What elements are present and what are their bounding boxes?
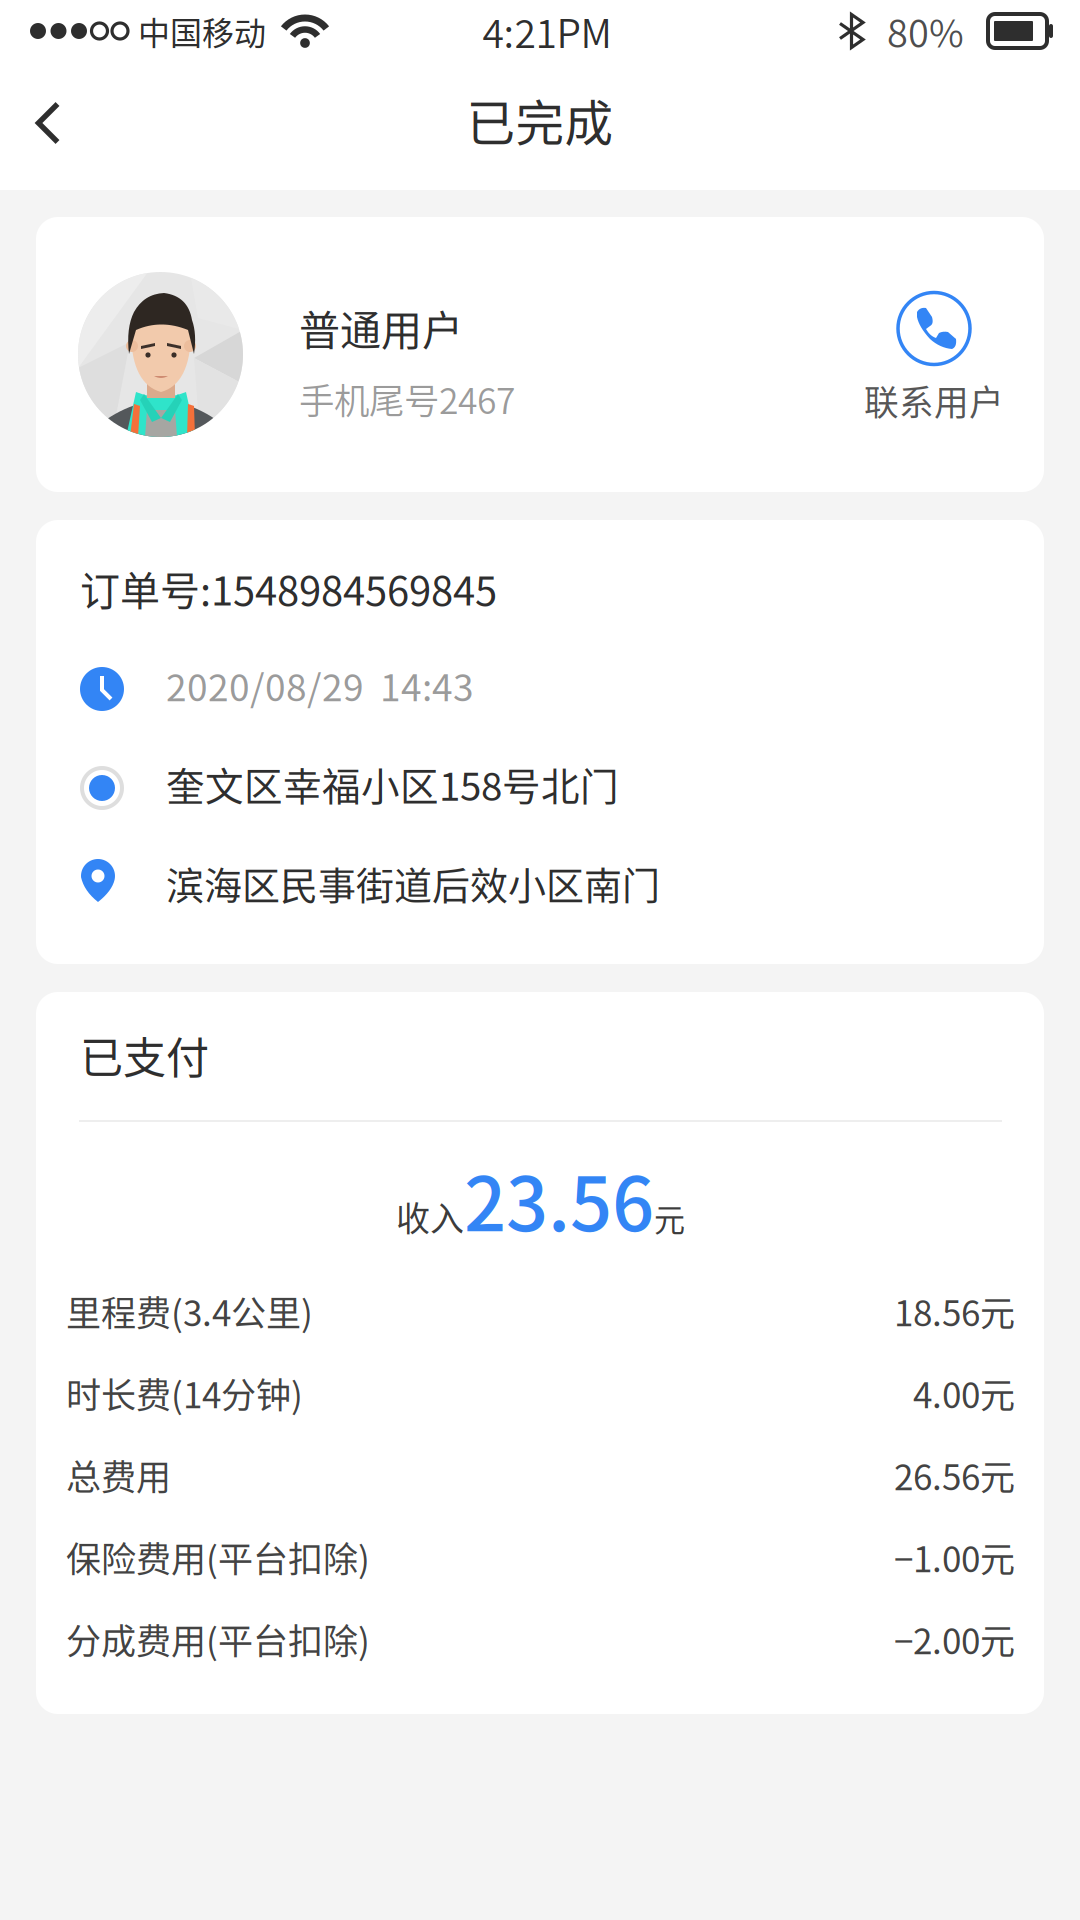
staticText: 已完成: [466, 85, 613, 155]
staticText: 保险费用(平台扣除): [66, 1532, 370, 1582]
staticText: −2.00元: [894, 1614, 1015, 1664]
staticText: 26.56元: [894, 1450, 1015, 1500]
staticText: 普通用户: [299, 298, 463, 357]
staticText: 滨海区民事街道后效小区南门: [166, 855, 660, 910]
staticText: 80%: [887, 3, 964, 58]
staticText: 已支付: [80, 1024, 209, 1086]
staticText: 2020/08/29 14:43: [166, 658, 474, 712]
staticText: 18.56元: [894, 1286, 1015, 1336]
staticText: 4.00元: [913, 1368, 1015, 1418]
staticText: 联系用户: [864, 375, 1004, 426]
staticText: 总费用: [66, 1450, 171, 1500]
staticText: 里程费(3.4公里): [66, 1286, 313, 1336]
staticText: 收入: [396, 1192, 464, 1241]
staticText: 分成费用(平台扣除): [66, 1614, 370, 1664]
staticText: 中国移动: [138, 8, 266, 54]
staticText: 时长费(14分钟): [66, 1368, 303, 1418]
staticText: 订单号:1548984569845: [80, 559, 497, 617]
staticText: 23.56: [464, 1145, 654, 1253]
staticText: −1.00元: [894, 1532, 1015, 1582]
staticText: 奎文区幸福小区158号北门: [166, 756, 619, 812]
button[interactable]: Back: [0, 78, 96, 174]
staticText: 元: [654, 1195, 685, 1240]
button[interactable]: 联系用户: [854, 291, 1014, 417]
staticText: 手机尾号2467: [299, 373, 515, 424]
staticText: 4:21PM: [482, 3, 611, 59]
